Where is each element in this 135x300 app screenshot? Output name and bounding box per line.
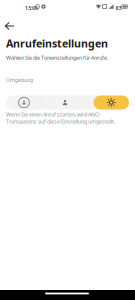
button[interactable]: Stimme [42,95,88,109]
staticText: Anrufeinstellungen [6,36,108,50]
button[interactable]: Zurück [0,16,19,35]
button[interactable]: Aus [6,95,42,109]
staticText: Umgebung [6,76,33,83]
button[interactable]: Umgebung [93,95,129,109]
staticText: 83 [115,4,121,11]
staticText: Wenn Sie einen Anruf starten, wird ANC/T… [6,111,115,125]
staticText: Wählen Sie die Toneinstellungen für Anru… [6,54,108,61]
staticText: 13:06 [25,4,38,11]
